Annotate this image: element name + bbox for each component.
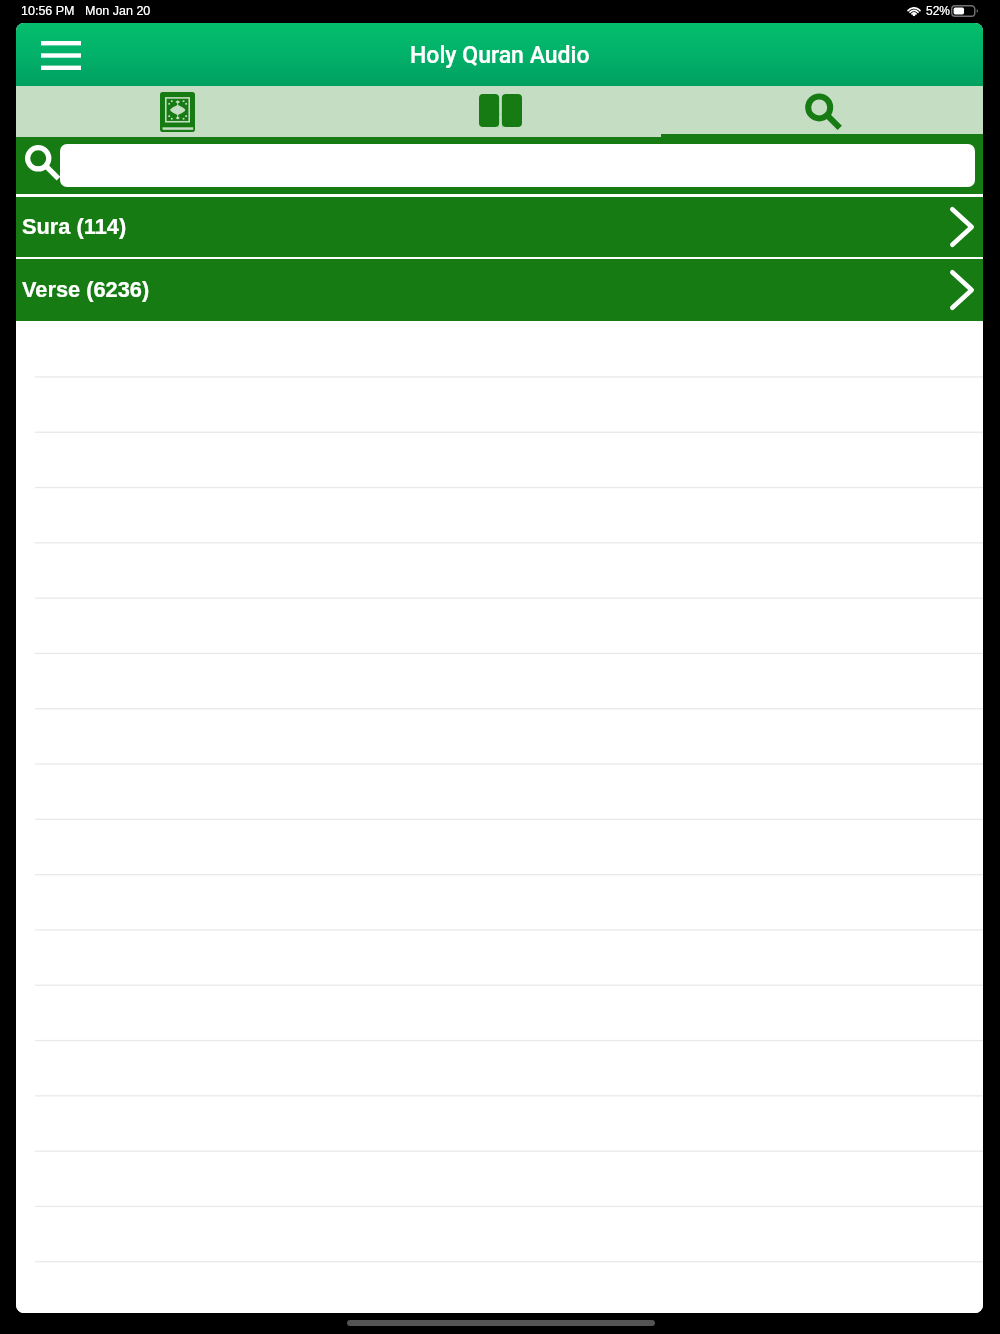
staticText: Holy Quran Audio — [410, 42, 590, 69]
button[interactable]: Read — [339, 86, 661, 137]
button[interactable]: Quran — [16, 86, 339, 137]
button[interactable]: Open navigation menu — [33, 30, 89, 80]
staticText: Mon Jan 20 — [85, 4, 151, 18]
staticText: Sura (114) — [22, 214, 127, 238]
staticText: Verse (6236) — [22, 277, 150, 301]
button[interactable]: Sura (114) — [16, 197, 983, 257]
staticText: 10:56 PM — [21, 4, 75, 18]
staticText: 52% — [926, 4, 951, 17]
button[interactable]: Search — [661, 86, 983, 137]
button[interactable]: Verse (6236) — [16, 259, 983, 321]
button[interactable]: Search field — [60, 144, 975, 187]
